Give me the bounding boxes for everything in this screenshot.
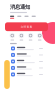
button[interactable] (11, 72, 43, 77)
button[interactable] (11, 52, 43, 58)
button[interactable] (11, 65, 43, 71)
button[interactable] (11, 59, 43, 64)
button[interactable]: Quick action (37, 33, 42, 41)
staticText: 消息通知 (10, 4, 30, 10)
button[interactable] (11, 46, 43, 51)
button[interactable]: Quick action (9, 33, 15, 41)
button[interactable]: 立即查看 (5, 22, 48, 31)
button[interactable]: Quick action (19, 33, 24, 41)
button[interactable]: Quick action (28, 33, 33, 41)
staticText: 立即查看 (20, 25, 32, 28)
